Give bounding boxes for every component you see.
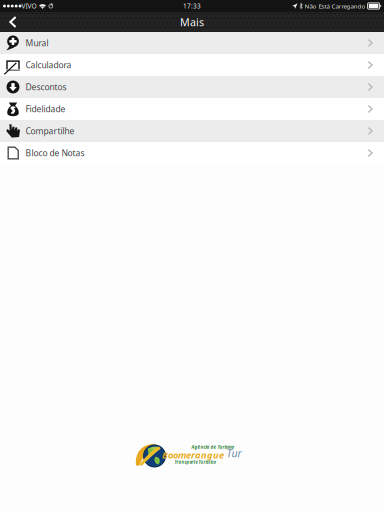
staticText: Descontos [25,81,66,93]
button[interactable]: Fidelidade [0,98,384,120]
staticText: Tur [226,446,241,460]
staticText: Bloco de Notas [25,147,84,159]
staticText: Não Está Carregando [305,2,366,10]
staticText: Agência de Turismo [191,444,234,450]
staticText: VIVO [21,1,36,11]
button[interactable]: Mural [0,32,384,54]
staticText: Fidelidade [25,103,65,115]
staticText: Calculadora [25,59,71,71]
button[interactable]: Descontos [0,76,384,98]
staticText: Mural [25,37,48,49]
staticText: Compartilhe [25,125,74,137]
staticText: Boomerangue [162,449,224,461]
staticText: Mais [180,15,204,29]
staticText: Transporte Turístico [174,459,215,465]
button[interactable]: Voltar [0,13,24,31]
staticText: 17:33 [183,2,201,10]
button[interactable]: Bloco de Notas [0,142,384,164]
button[interactable]: Compartilhe [0,120,384,142]
button[interactable]: Calculadora [0,54,384,76]
